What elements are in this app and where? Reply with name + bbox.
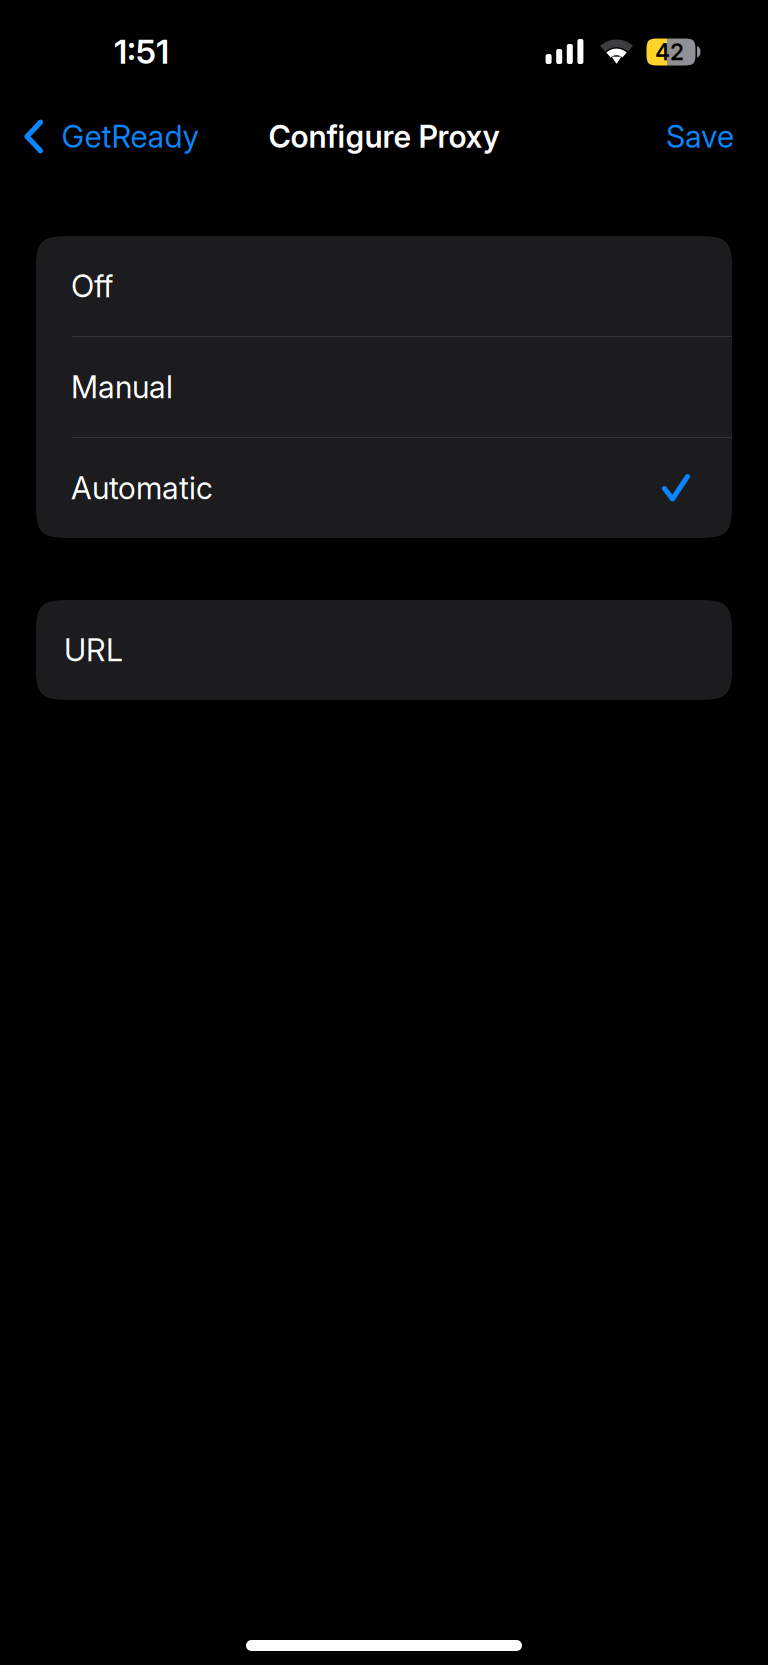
staticText: GetReady xyxy=(61,118,198,155)
button[interactable]: GetReady xyxy=(0,96,212,182)
button[interactable]: Save xyxy=(648,96,752,182)
staticText: Automatic xyxy=(71,469,213,506)
button[interactable]: Manual xyxy=(36,337,732,437)
button[interactable]: Off xyxy=(36,236,732,336)
staticText: Off xyxy=(71,267,113,304)
staticText: Save xyxy=(666,118,734,155)
staticText: 42 xyxy=(655,38,684,66)
staticText: Configure Proxy xyxy=(268,118,499,155)
button[interactable]: URL xyxy=(36,600,732,700)
staticText: Manual xyxy=(71,368,173,405)
staticText: URL xyxy=(64,631,123,668)
button[interactable]: Automatic xyxy=(36,438,732,538)
staticText: 1:51 xyxy=(114,31,169,72)
